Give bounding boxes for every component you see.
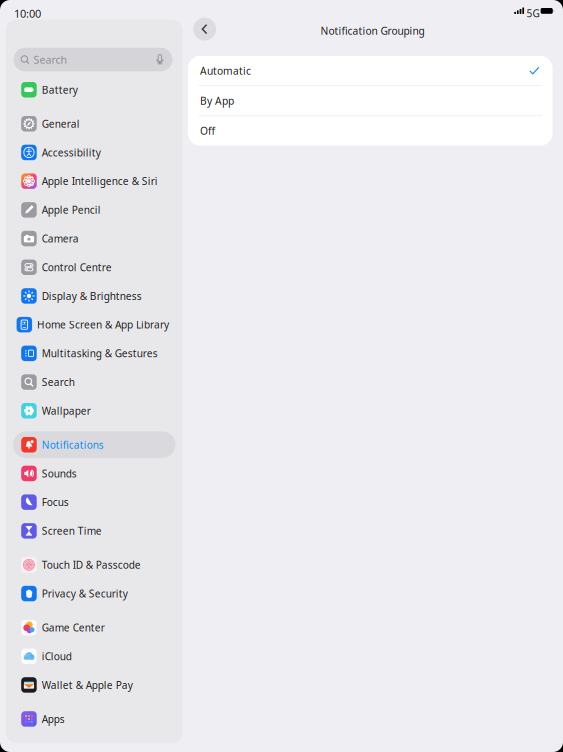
- staticText: Search: [33, 52, 67, 67]
- staticText: Control Centre: [42, 260, 112, 274]
- staticText: 5G: [527, 6, 540, 20]
- staticText: By App: [200, 94, 234, 108]
- button[interactable]: Privacy & Security: [13, 580, 175, 607]
- button[interactable]: Back: [193, 18, 216, 41]
- staticText: iCloud: [42, 649, 72, 663]
- button[interactable]: Automatic: [188, 56, 552, 86]
- staticText: Privacy & Security: [42, 587, 128, 600]
- button[interactable]: Touch ID & Passcode: [13, 551, 175, 578]
- staticText: Automatic: [200, 64, 251, 78]
- button[interactable]: Apps: [13, 706, 175, 732]
- staticText: Battery: [42, 83, 78, 97]
- staticText: Screen Time: [42, 524, 102, 538]
- button[interactable]: Control Centre: [13, 254, 175, 281]
- button[interactable]: Wallet & Apple Pay: [13, 672, 175, 698]
- staticText: Camera: [42, 232, 79, 245]
- button[interactable]: Battery: [13, 76, 175, 103]
- button[interactable]: Focus: [13, 489, 175, 515]
- button[interactable]: Accessibility: [13, 139, 175, 166]
- staticText: Apple Pencil: [42, 203, 101, 217]
- staticText: Off: [200, 124, 215, 138]
- button[interactable]: Camera: [13, 225, 175, 252]
- button[interactable]: Apple Pencil: [13, 196, 175, 223]
- button[interactable]: Home Screen & App Library: [13, 311, 175, 338]
- button[interactable]: Wallpaper: [13, 397, 175, 424]
- staticText: Game Center: [42, 621, 105, 634]
- staticText: Search: [42, 375, 75, 389]
- button[interactable]: Notifications: [13, 431, 175, 458]
- staticText: Notifications: [42, 438, 104, 452]
- button[interactable]: Display & Brightness: [13, 283, 175, 309]
- staticText: Display & Brightness: [42, 289, 142, 303]
- button[interactable]: Search: [13, 48, 172, 71]
- staticText: Wallpaper: [42, 404, 91, 418]
- staticText: Apple Intelligence & Siri: [42, 174, 158, 188]
- button[interactable]: Screen Time: [13, 517, 175, 544]
- staticText: Home Screen & App Library: [37, 318, 169, 331]
- button[interactable]: By App: [188, 86, 552, 116]
- staticText: Focus: [42, 495, 69, 509]
- staticText: Wallet & Apple Pay: [42, 678, 133, 692]
- button[interactable]: Search: [13, 369, 175, 395]
- staticText: Sounds: [42, 466, 77, 480]
- staticText: 10:00: [14, 6, 41, 21]
- button[interactable]: iCloud: [13, 643, 175, 670]
- staticText: Notification Grouping: [320, 24, 424, 38]
- staticText: Touch ID & Passcode: [42, 558, 141, 572]
- staticText: Apps: [42, 712, 65, 726]
- staticText: Multitasking & Gestures: [42, 346, 158, 360]
- staticText: Accessibility: [42, 145, 101, 159]
- button[interactable]: Multitasking & Gestures: [13, 340, 175, 367]
- button[interactable]: Game Center: [13, 614, 175, 641]
- staticText: General: [42, 117, 80, 131]
- button[interactable]: Apple Intelligence & Siri: [13, 168, 175, 194]
- button[interactable]: General: [13, 110, 175, 137]
- button[interactable]: Sounds: [13, 460, 175, 487]
- button[interactable]: Off: [188, 116, 552, 145]
